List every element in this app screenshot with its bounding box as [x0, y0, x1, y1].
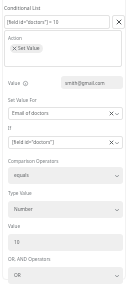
staticText: Set Value For — [8, 97, 37, 103]
staticText: equals — [14, 172, 115, 179]
staticText: Number — [14, 206, 115, 213]
staticText: OR — [14, 272, 115, 279]
button[interactable]: Number — [8, 201, 123, 218]
staticText: Action — [8, 35, 22, 41]
staticText: Email of doctors — [12, 110, 110, 117]
button[interactable]: [field id="doctors"] — [8, 136, 123, 149]
button[interactable]: [field id="doctors"] = 10 — [4, 15, 110, 29]
staticText: [field id="doctors"] = 10 — [7, 19, 59, 25]
button[interactable]: Email of doctors — [8, 107, 123, 120]
staticText: OR, AND Operators — [8, 256, 51, 262]
button[interactable]: OR — [8, 267, 123, 284]
button[interactable]: 10 — [8, 234, 123, 251]
staticText: Conditional List — [4, 5, 41, 12]
staticText: Value — [8, 80, 21, 86]
staticText: [field id="doctors"] — [12, 139, 110, 146]
button[interactable]: Set Value — [10, 44, 43, 53]
staticText: smith@gmail.com — [65, 80, 105, 86]
staticText: Comparison Operators — [8, 158, 59, 164]
button[interactable]: equals — [8, 167, 123, 184]
staticText: Value — [8, 223, 21, 229]
button[interactable]: Remove condition — [112, 15, 125, 29]
button[interactable]: smith@gmail.com — [61, 76, 123, 89]
staticText: Type Value — [8, 190, 32, 196]
staticText: Set Value — [18, 45, 40, 52]
staticText: If — [8, 125, 12, 131]
staticText: 10 — [14, 239, 119, 246]
